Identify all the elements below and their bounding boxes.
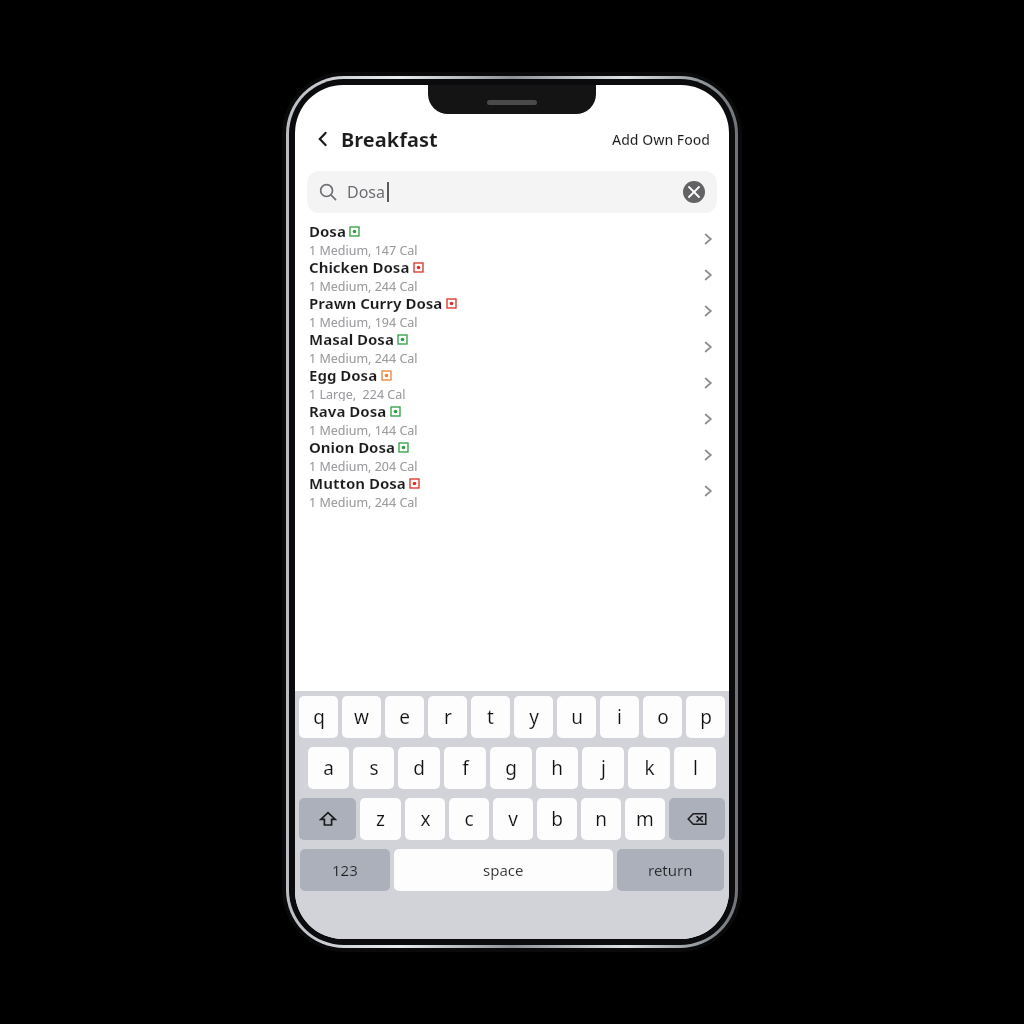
staticText: 1 Medium, 194 Cal — [309, 314, 418, 329]
staticText: Mutton Dosa — [309, 473, 406, 493]
staticText: q — [313, 704, 325, 730]
button[interactable]: t — [471, 696, 510, 738]
staticText: n — [595, 806, 607, 832]
staticText: w — [354, 704, 369, 730]
staticText: return — [648, 860, 693, 880]
staticText: Dosa — [347, 181, 386, 203]
staticText: m — [636, 806, 654, 832]
button[interactable]: x — [405, 798, 445, 840]
staticText: 123 — [332, 860, 358, 880]
button[interactable]: h — [536, 747, 578, 789]
button[interactable]: Dosa — [307, 171, 717, 213]
staticText: 1 Medium, 147 Cal — [309, 242, 418, 257]
staticText: Dosa — [309, 221, 346, 241]
staticText: Egg Dosa — [309, 365, 378, 385]
button[interactable]: j — [582, 747, 624, 789]
button[interactable]: space — [394, 849, 613, 891]
staticText: c — [464, 806, 474, 832]
button[interactable]: z — [360, 798, 401, 840]
button[interactable]: e — [385, 696, 424, 738]
staticText: Prawn Curry Dosa — [309, 293, 443, 313]
staticText: t — [487, 704, 494, 730]
staticText: v — [508, 806, 518, 832]
staticText: i — [617, 704, 622, 730]
staticText: Add Own Food — [612, 130, 711, 149]
button[interactable]: Egg Dosa — [295, 365, 729, 401]
staticText: y — [529, 704, 539, 730]
staticText: Onion Dosa — [309, 437, 395, 457]
staticText: z — [376, 806, 385, 832]
button[interactable]: g — [490, 747, 532, 789]
button[interactable]: Masal Dosa — [295, 329, 729, 365]
staticText: o — [657, 704, 669, 730]
staticText: l — [693, 755, 698, 781]
button[interactable]: f — [444, 747, 486, 789]
staticText: space — [483, 860, 524, 880]
button[interactable]: n — [581, 798, 621, 840]
staticText: f — [462, 755, 469, 781]
staticText: u — [571, 704, 583, 730]
staticText: r — [444, 704, 452, 730]
button[interactable]: i — [600, 696, 639, 738]
button[interactable]: s — [353, 747, 394, 789]
button[interactable]: Clear search — [683, 181, 705, 203]
button[interactable]: d — [398, 747, 440, 789]
staticText: s — [369, 755, 379, 781]
button[interactable]: Back — [309, 125, 337, 153]
button[interactable]: Backspace — [669, 798, 725, 840]
button[interactable]: Rava Dosa — [295, 401, 729, 437]
button[interactable]: Dosa — [295, 221, 729, 257]
button[interactable]: Shift — [299, 798, 356, 840]
button[interactable]: k — [628, 747, 670, 789]
staticText: h — [551, 755, 563, 781]
button[interactable]: m — [625, 798, 665, 840]
button[interactable]: a — [308, 747, 349, 789]
staticText: 1 Large, 224 Cal — [309, 386, 406, 401]
button[interactable]: y — [514, 696, 553, 738]
button[interactable]: c — [449, 798, 489, 840]
staticText: k — [644, 755, 655, 781]
staticText: b — [551, 806, 563, 832]
button[interactable]: q — [299, 696, 338, 738]
staticText: Masal Dosa — [309, 329, 394, 349]
button[interactable]: b — [537, 798, 577, 840]
staticText: Chicken Dosa — [309, 257, 410, 277]
button[interactable]: w — [342, 696, 381, 738]
staticText: x — [420, 806, 431, 832]
staticText: e — [399, 704, 410, 730]
staticText: Breakfast — [341, 126, 438, 153]
staticText: 1 Medium, 204 Cal — [309, 458, 418, 473]
button[interactable]: return — [617, 849, 724, 891]
staticText: 1 Medium, 244 Cal — [309, 494, 418, 509]
staticText: p — [700, 704, 712, 730]
staticText: Rava Dosa — [309, 401, 387, 421]
button[interactable]: Onion Dosa — [295, 437, 729, 473]
staticText: 1 Medium, 244 Cal — [309, 278, 418, 293]
staticText: d — [413, 755, 425, 781]
button[interactable]: r — [428, 696, 467, 738]
button[interactable]: Chicken Dosa — [295, 257, 729, 293]
button[interactable]: Mutton Dosa — [295, 473, 729, 509]
button[interactable]: l — [674, 747, 716, 789]
button[interactable]: v — [493, 798, 533, 840]
button[interactable]: p — [686, 696, 725, 738]
button[interactable]: o — [643, 696, 682, 738]
button[interactable]: Prawn Curry Dosa — [295, 293, 729, 329]
staticText: a — [323, 755, 334, 781]
staticText: j — [601, 755, 606, 781]
staticText: g — [505, 755, 517, 781]
staticText: 1 Medium, 144 Cal — [309, 422, 418, 437]
button[interactable]: 123 — [300, 849, 390, 891]
button[interactable]: u — [557, 696, 596, 738]
staticText: 1 Medium, 244 Cal — [309, 350, 418, 365]
button[interactable]: Add Own Food — [608, 126, 715, 153]
